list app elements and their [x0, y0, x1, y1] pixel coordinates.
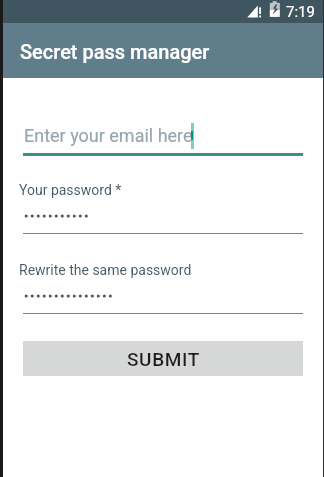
button[interactable]: Your password * — [19, 178, 303, 236]
staticText: Your password * — [19, 182, 122, 198]
button[interactable]: Enter your email here — [23, 116, 303, 156]
staticText: Secret pass manager — [20, 40, 210, 63]
staticText: Rewrite the same password — [19, 262, 192, 278]
other: Mobile signal — [245, 4, 262, 18]
staticText: Enter your email here — [24, 125, 193, 146]
other: Battery charging — [269, 1, 281, 18]
staticText: SUBMIT — [127, 348, 200, 370]
staticText: 7:19 — [286, 3, 315, 21]
button[interactable]: SUBMIT — [23, 341, 303, 376]
button[interactable]: Rewrite the same password — [19, 258, 303, 316]
